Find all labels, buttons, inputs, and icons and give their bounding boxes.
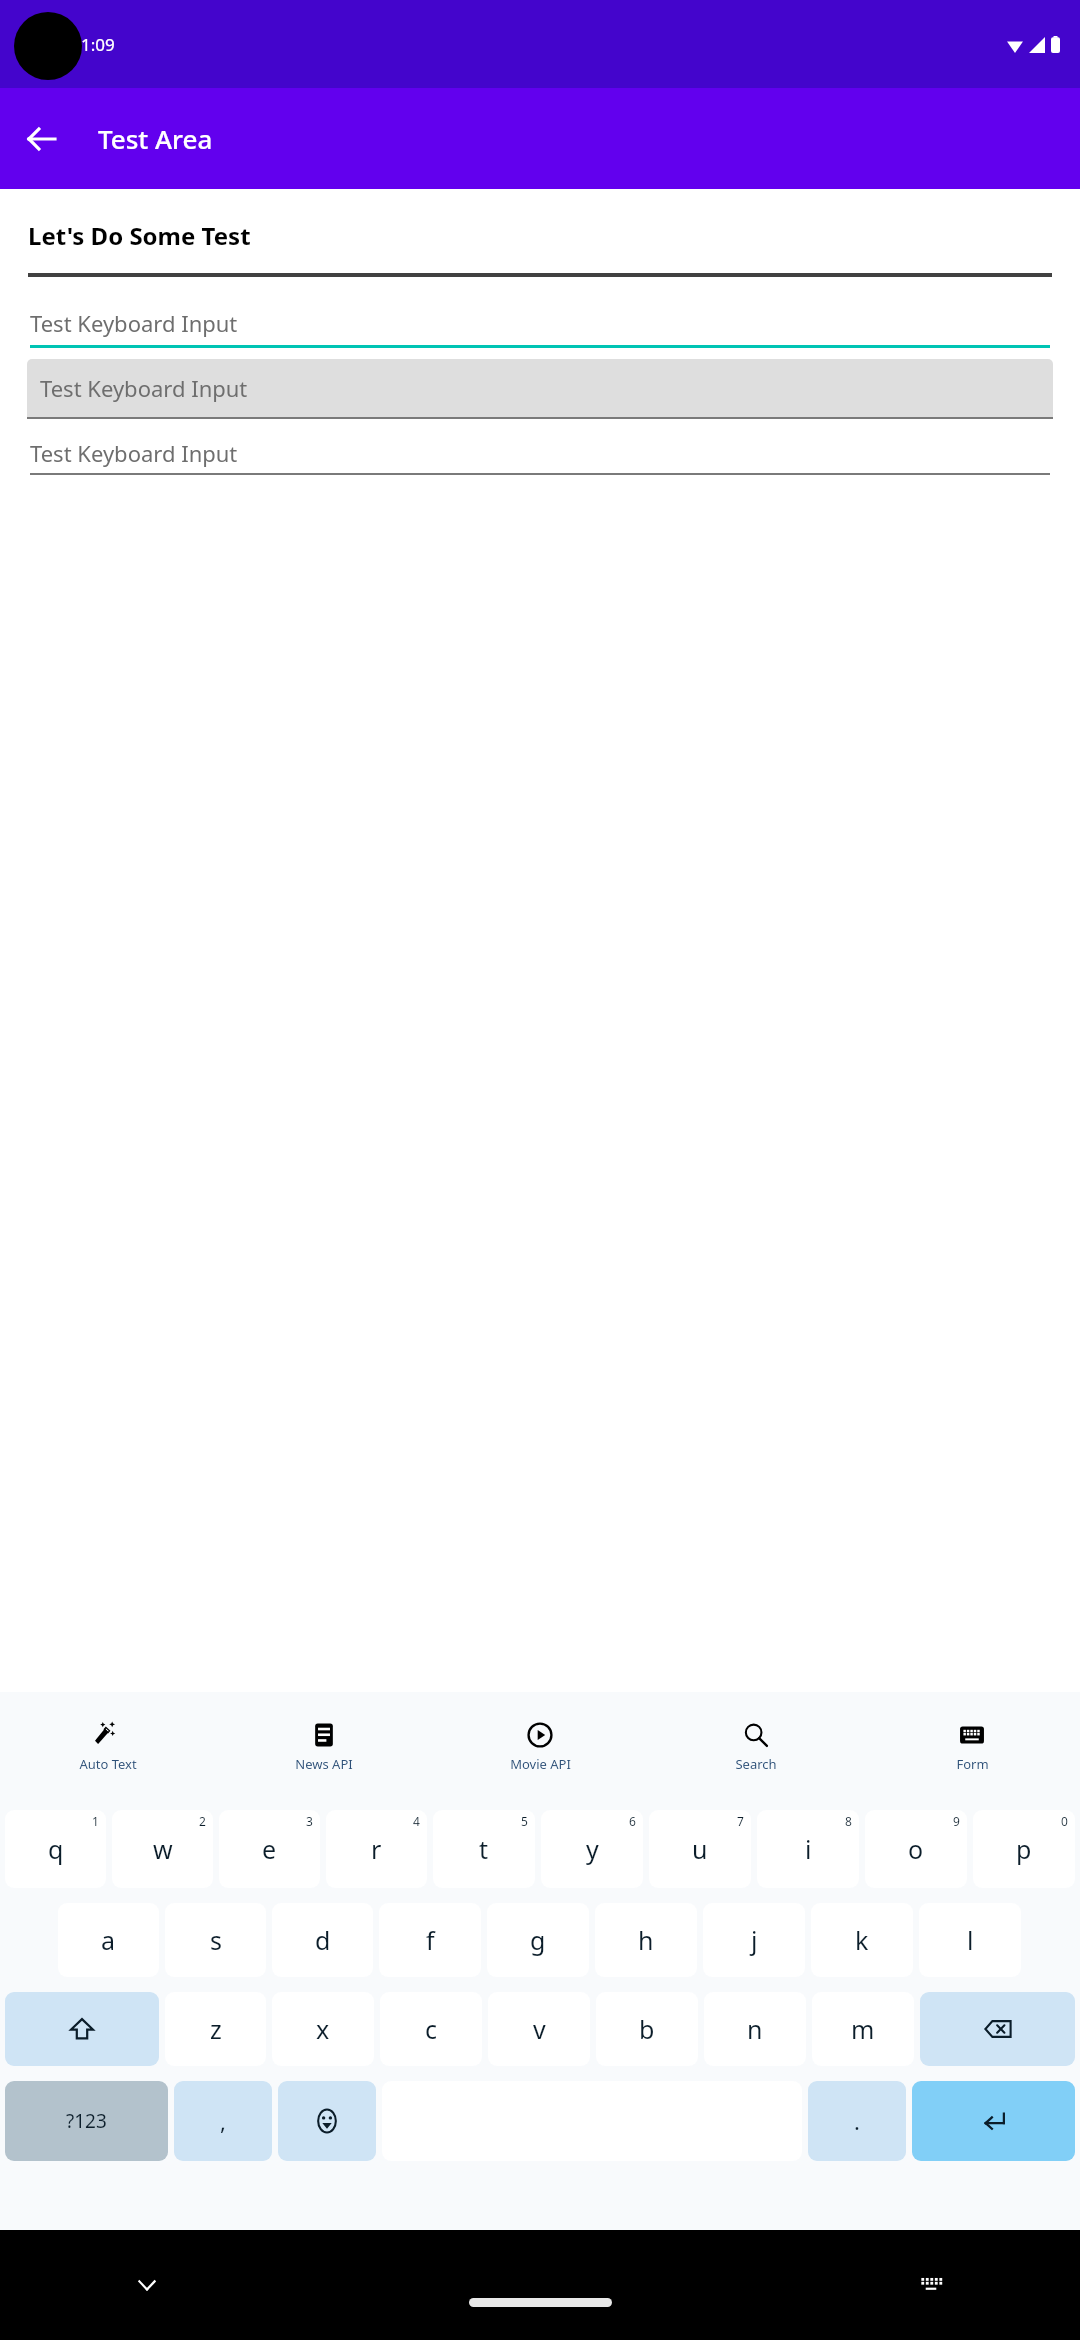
staticText: Search (735, 1755, 777, 1773)
button[interactable]: Backspace (920, 1992, 1075, 2066)
button[interactable]: Test Keyboard Input (30, 433, 1050, 475)
staticText: c (425, 2012, 438, 2046)
button[interactable]: Test Keyboard Input (27, 359, 1053, 419)
staticText: f (426, 1923, 435, 1957)
button[interactable]: i (757, 1810, 859, 1888)
button[interactable]: g (487, 1903, 589, 1977)
button[interactable]: Back (14, 111, 70, 167)
staticText: 9 (953, 1813, 960, 1829)
staticText: t (479, 1832, 489, 1866)
button[interactable]: o (865, 1810, 967, 1888)
staticText: r (371, 1832, 382, 1866)
staticText: u (692, 1832, 708, 1866)
button[interactable]: Emoji (278, 2081, 376, 2161)
button[interactable]: , (174, 2081, 272, 2161)
button[interactable]: r (326, 1810, 427, 1888)
button[interactable]: Movie API (432, 1692, 648, 1802)
button[interactable]: s (165, 1903, 266, 1977)
button[interactable]: e (219, 1810, 320, 1888)
staticText: 3 (306, 1813, 313, 1829)
button[interactable]: j (703, 1903, 805, 1977)
staticText: 5 (521, 1813, 528, 1829)
button[interactable]: a (58, 1903, 159, 1977)
button[interactable]: f (379, 1903, 481, 1977)
staticText: 7 (737, 1813, 744, 1829)
staticText: z (210, 2012, 222, 2046)
staticText: 4 (413, 1813, 420, 1829)
button[interactable]: Enter (912, 2081, 1075, 2161)
button[interactable]: l (919, 1903, 1021, 1977)
button[interactable]: News API (216, 1692, 432, 1802)
staticText: k (855, 1923, 869, 1957)
button[interactable]: Auto Text (0, 1692, 216, 1802)
staticText: e (262, 1832, 277, 1866)
button[interactable]: ?123 (5, 2081, 168, 2161)
button[interactable]: d (272, 1903, 373, 1977)
button[interactable]: Test Keyboard Input (30, 301, 1050, 348)
staticText: Let's Do Some Test (28, 219, 251, 252)
button[interactable]: y (541, 1810, 643, 1888)
button[interactable]: v (488, 1992, 590, 2066)
staticText: Auto Text (79, 1755, 137, 1773)
staticText: h (638, 1923, 654, 1957)
button[interactable]: t (433, 1810, 535, 1888)
staticText: Test Keyboard Input (30, 308, 238, 338)
staticText: i (805, 1832, 812, 1866)
button[interactable]: b (596, 1992, 698, 2066)
button[interactable]: w (112, 1810, 213, 1888)
staticText: 6 (629, 1813, 636, 1829)
staticText: Movie API (510, 1755, 571, 1773)
staticText: d (315, 1923, 331, 1957)
staticText: Test Area (98, 121, 213, 156)
staticText: g (530, 1923, 546, 1957)
button[interactable]: n (704, 1992, 806, 2066)
staticText: Test Keyboard Input (30, 438, 238, 468)
staticText: l (967, 1923, 974, 1957)
staticText: 1 (92, 1813, 99, 1829)
staticText: b (639, 2012, 655, 2046)
staticText: q (48, 1832, 64, 1866)
button[interactable]: Home (469, 2298, 612, 2307)
staticText: p (1016, 1832, 1032, 1866)
button[interactable]: m (812, 1992, 914, 2066)
staticText: 1:09 (81, 33, 115, 56)
staticText: y (586, 1832, 599, 1866)
button[interactable]: q (5, 1810, 106, 1888)
button[interactable]: Search (648, 1692, 864, 1802)
staticText: v (533, 2012, 546, 2046)
staticText: 8 (845, 1813, 852, 1829)
staticText: m (851, 2012, 875, 2046)
button[interactable]: Shift (5, 1992, 159, 2066)
staticText: n (747, 2012, 763, 2046)
button[interactable]: x (272, 1992, 374, 2066)
staticText: Form (956, 1755, 989, 1773)
staticText: o (908, 1832, 924, 1866)
staticText: , (220, 2106, 226, 2136)
staticText: s (210, 1923, 222, 1957)
button[interactable]: k (811, 1903, 913, 1977)
button[interactable]: u (649, 1810, 751, 1888)
staticText: ?123 (66, 2108, 107, 2134)
staticText: Test Keyboard Input (40, 373, 248, 403)
button[interactable]: . (808, 2081, 906, 2161)
staticText: j (751, 1923, 758, 1957)
staticText: 0 (1061, 1813, 1068, 1829)
button[interactable]: Hide keyboard (120, 2258, 174, 2312)
staticText: w (153, 1832, 173, 1866)
button[interactable]: Switch keyboard (904, 2258, 958, 2312)
staticText: a (101, 1923, 116, 1957)
staticText: 2 (199, 1813, 206, 1829)
button[interactable]: c (380, 1992, 482, 2066)
button[interactable]: p (973, 1810, 1075, 1888)
button[interactable]: z (165, 1992, 266, 2066)
button[interactable]: Form (864, 1692, 1080, 1802)
staticText: . (854, 2106, 860, 2136)
staticText: News API (295, 1755, 353, 1773)
button[interactable]: h (595, 1903, 697, 1977)
staticText: x (316, 2012, 330, 2046)
